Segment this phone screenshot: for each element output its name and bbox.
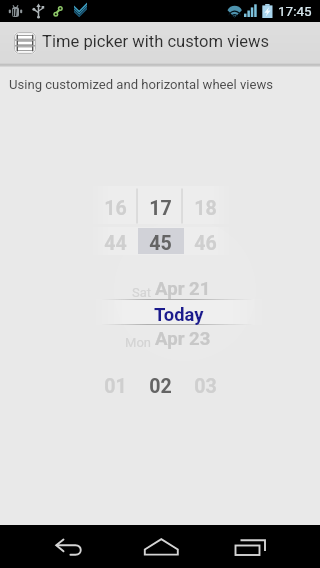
button[interactable]: Mon	[120, 328, 211, 350]
staticText: 16	[93, 197, 138, 220]
button[interactable]: Recent apps	[210, 525, 290, 568]
staticText: 02	[138, 375, 183, 398]
staticText: 46	[183, 232, 228, 255]
staticText: 03	[183, 375, 228, 398]
staticText: Mon	[120, 335, 151, 350]
staticText: 01	[93, 375, 138, 398]
staticText: 17:45	[278, 3, 312, 19]
button[interactable]: 16	[93, 197, 228, 220]
staticText: 18	[183, 197, 228, 220]
button[interactable]: Today	[154, 304, 204, 326]
button[interactable]: 44	[93, 232, 228, 255]
staticText: 44	[93, 232, 138, 255]
staticText: Sat	[120, 285, 151, 300]
staticText: 45	[138, 232, 183, 255]
staticText: Apr 21	[155, 278, 211, 300]
staticText: Apr 23	[155, 328, 211, 350]
staticText: Today	[154, 304, 204, 326]
button[interactable]: Home	[121, 525, 201, 568]
staticText: 17	[138, 197, 183, 220]
staticText: Using customized and horizontal wheel vi…	[9, 77, 274, 92]
staticText: Time picker with custom views	[42, 32, 270, 51]
button[interactable]: 01	[93, 375, 228, 398]
button[interactable]: Sat	[120, 278, 211, 300]
button[interactable]: Back	[30, 525, 110, 568]
